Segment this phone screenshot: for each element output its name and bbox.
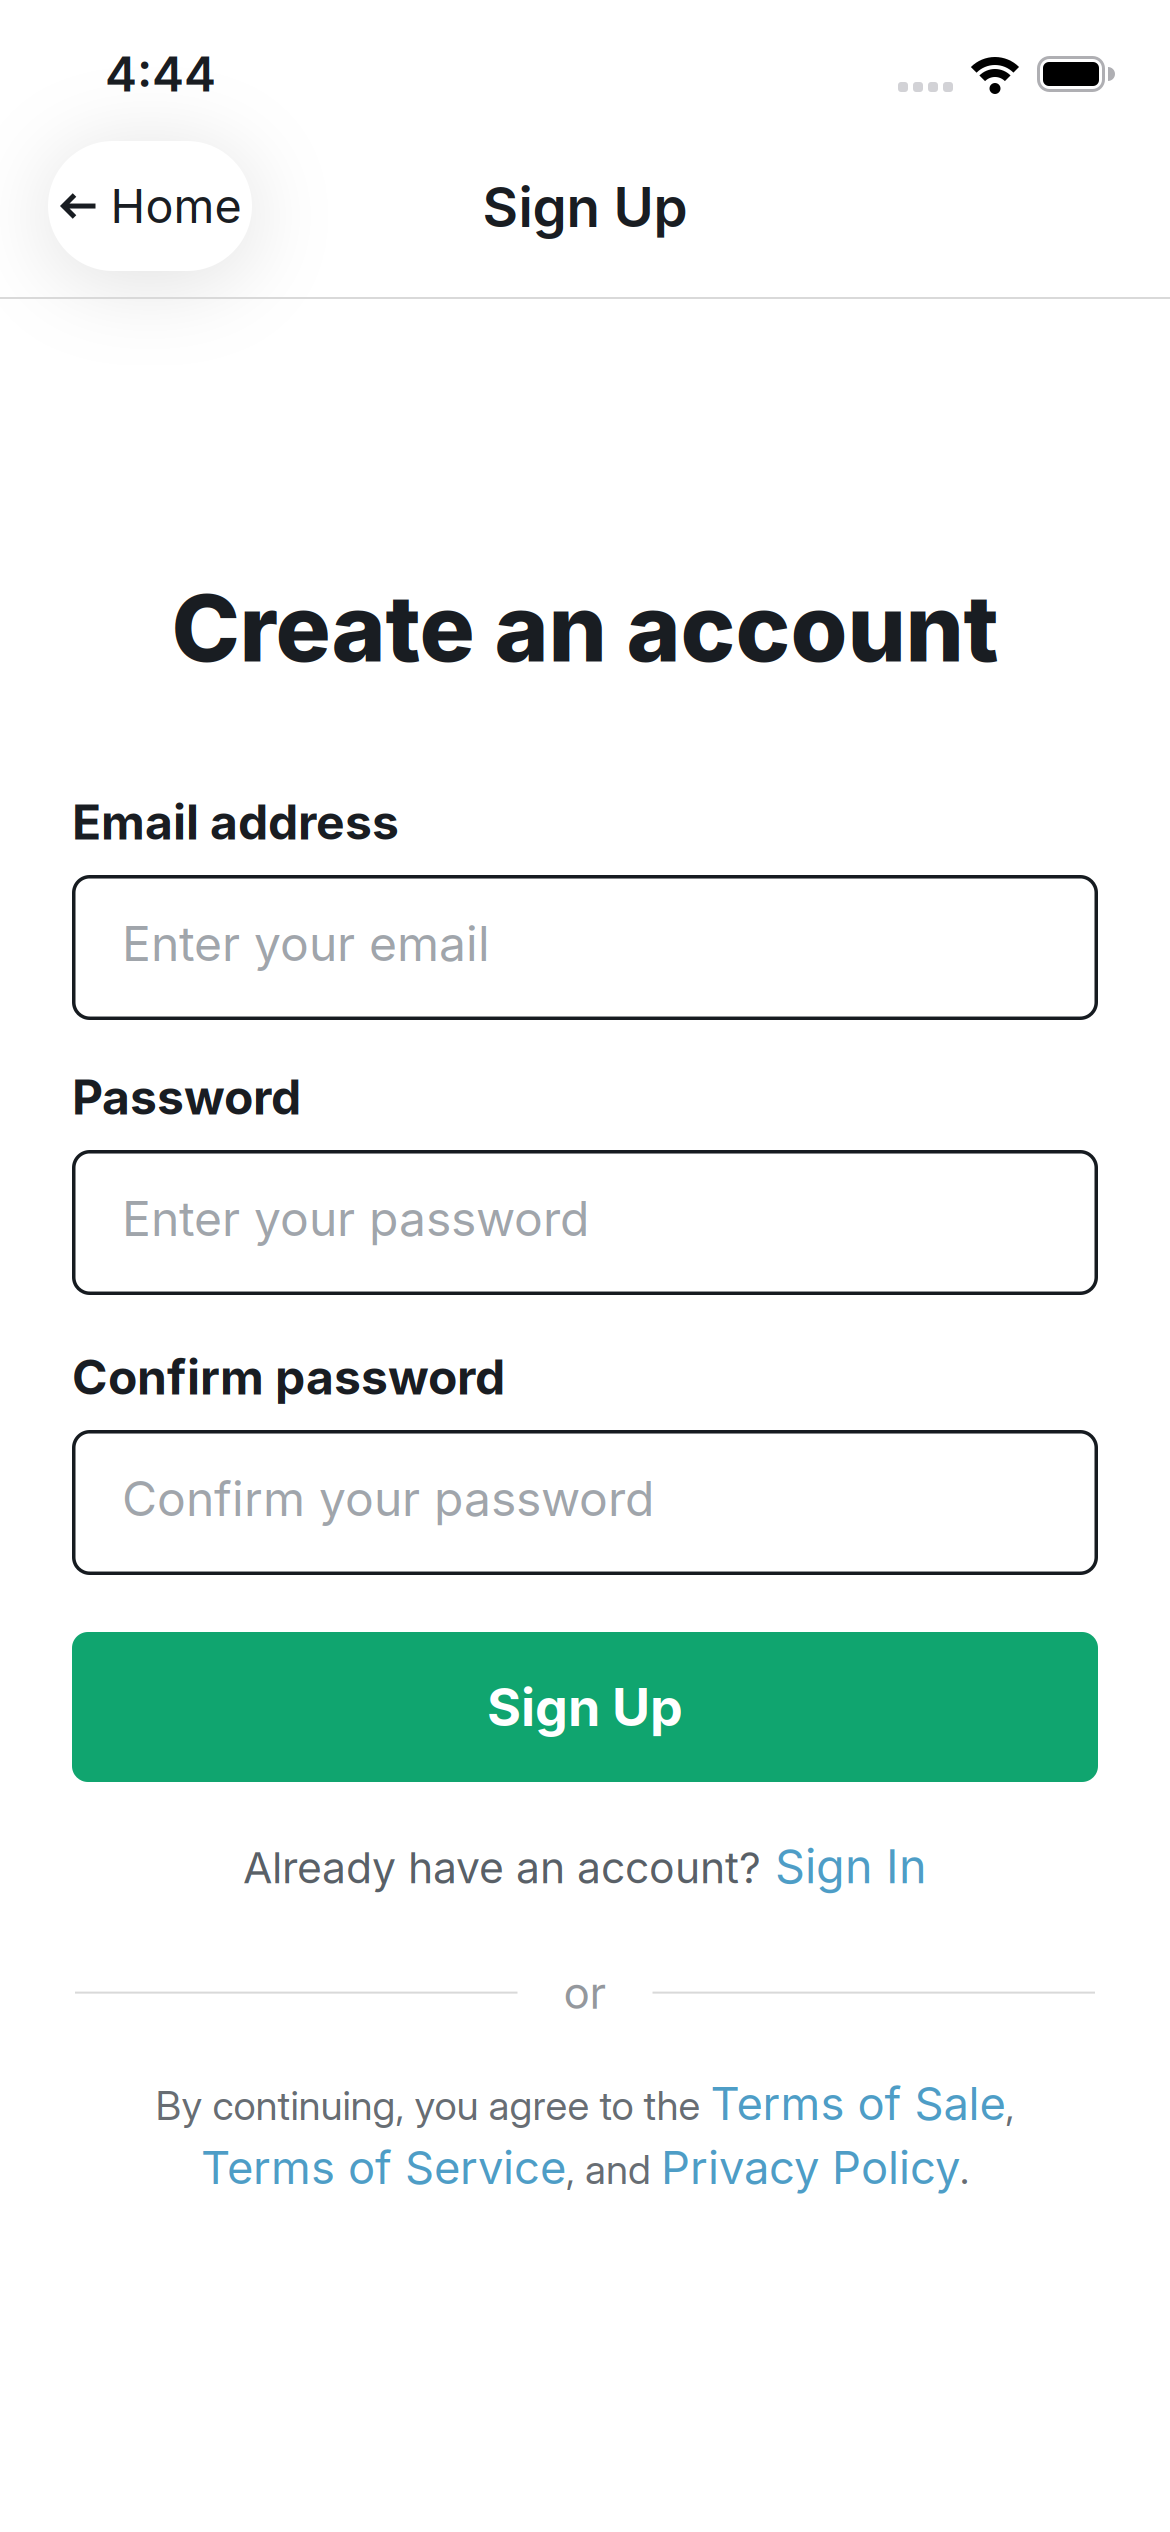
staticText: .: [960, 2145, 969, 2194]
button[interactable]: Sign Up: [72, 1632, 1098, 1782]
staticText: Sign In: [775, 1838, 927, 1894]
staticText: Email address: [72, 793, 399, 851]
staticText: Enter your email: [122, 914, 490, 973]
button[interactable]: Confirm password: [72, 1430, 1098, 1575]
staticText: Password: [72, 1068, 301, 1126]
staticText: ,: [1005, 2081, 1014, 2130]
staticText: Create an account: [171, 572, 998, 684]
staticText: or: [563, 1966, 606, 2019]
button[interactable]: Terms of Sale: [710, 2076, 1005, 2131]
staticText: 4:44: [105, 45, 216, 103]
staticText: Sign Up: [487, 1675, 683, 1738]
button[interactable]: Privacy Policy: [661, 2140, 960, 2195]
button[interactable]: Terms of Service: [201, 2140, 566, 2195]
button[interactable]: Password: [72, 1150, 1098, 1295]
staticText: Terms of Sale: [710, 2076, 1005, 2131]
staticText: Enter your password: [122, 1189, 589, 1248]
staticText: Home: [110, 178, 241, 234]
staticText: Terms of Service: [201, 2140, 566, 2195]
button[interactable]: Sign In: [775, 1838, 927, 1894]
staticText: Confirm password: [72, 1348, 505, 1406]
staticText: , and: [566, 2145, 661, 2194]
staticText: Confirm your password: [122, 1469, 654, 1528]
staticText: Already have an account?: [243, 1842, 761, 1893]
staticText: By continuing, you agree to the: [155, 2081, 710, 2130]
staticText: Sign Up: [482, 174, 687, 240]
button[interactable]: Email address: [72, 875, 1098, 1020]
button[interactable]: Back to Home: [48, 141, 252, 271]
staticText: Privacy Policy: [661, 2140, 960, 2195]
